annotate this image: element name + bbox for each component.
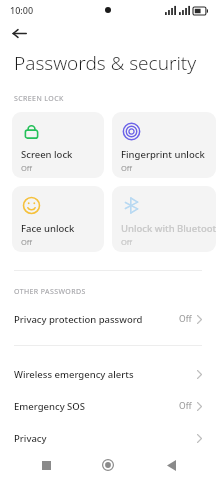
button[interactable]: Privacy protection password <box>0 303 216 335</box>
staticText: Off <box>21 237 33 247</box>
staticText: Fingerprint unlock <box>121 148 205 161</box>
button[interactable]: Recents <box>29 450 63 480</box>
button[interactable]: Home <box>91 450 125 480</box>
staticText: Privacy <box>14 432 197 445</box>
button[interactable]: Wireless emergency alerts <box>0 358 216 390</box>
staticText: Off <box>179 400 192 412</box>
staticText: Off <box>121 163 133 173</box>
button[interactable]: Back <box>6 20 32 46</box>
button[interactable]: Emergency SOS <box>0 390 216 422</box>
button[interactable]: Face unlock <box>12 186 104 252</box>
staticText: 10:00 <box>10 4 34 16</box>
staticText: Screen lock <box>21 148 73 161</box>
button[interactable]: Fingerprint unlock <box>112 112 216 178</box>
staticText: SCREEN LOCK <box>14 94 64 104</box>
staticText: Off <box>121 237 133 247</box>
button[interactable]: Screen lock <box>12 112 104 178</box>
staticText: Unlock with Bluetooth <box>121 222 216 235</box>
button[interactable]: Unlock with Bluetooth <box>112 186 216 252</box>
staticText: Face unlock <box>21 222 75 235</box>
staticText: Privacy protection password <box>14 313 179 326</box>
staticText: Off <box>21 163 33 173</box>
staticText: Passwords & security <box>14 50 197 76</box>
staticText: Emergency SOS <box>14 400 179 413</box>
staticText: OTHER PASSWORDS <box>14 287 86 297</box>
button[interactable]: Privacy <box>0 422 216 454</box>
staticText: Off <box>179 313 192 325</box>
button[interactable]: Back <box>154 450 188 480</box>
staticText: Wireless emergency alerts <box>14 368 197 381</box>
